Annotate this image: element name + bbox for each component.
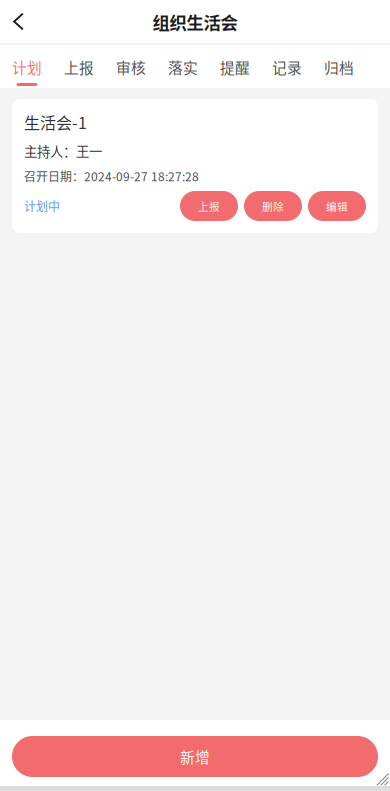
staticText: 编辑 <box>326 198 348 214</box>
staticText: 组织生活会 <box>152 9 237 35</box>
button[interactable]: 提醒 <box>220 45 250 88</box>
staticText: 上报 <box>198 198 220 214</box>
button[interactable]: 新增 <box>12 736 378 777</box>
staticText: 提醒 <box>220 56 250 78</box>
button[interactable]: 审核 <box>116 45 146 88</box>
button[interactable]: 上报 <box>64 45 94 88</box>
button[interactable]: 编辑 <box>308 191 366 221</box>
button[interactable]: 计划 <box>12 45 42 88</box>
button[interactable]: 删除 <box>244 191 302 221</box>
staticText: 记录 <box>272 56 302 78</box>
button[interactable]: 落实 <box>168 45 198 88</box>
staticText: 归档 <box>324 56 354 78</box>
staticText: 新增 <box>180 746 210 767</box>
staticText: 删除 <box>262 198 284 214</box>
button[interactable]: Back <box>0 0 37 43</box>
staticText: 落实 <box>168 56 198 78</box>
staticText: 计划中 <box>24 197 60 215</box>
staticText: 计划 <box>12 56 42 78</box>
staticText: 召开日期：2024-09-27 18:27:28 <box>24 167 199 185</box>
staticText: 审核 <box>116 56 146 78</box>
button[interactable]: 记录 <box>272 45 302 88</box>
staticText: 上报 <box>64 56 94 78</box>
button[interactable]: 上报 <box>180 191 238 221</box>
button[interactable]: 归档 <box>324 45 354 88</box>
staticText: 主持人：王一 <box>24 141 102 161</box>
staticText: 生活会-1 <box>24 110 87 134</box>
